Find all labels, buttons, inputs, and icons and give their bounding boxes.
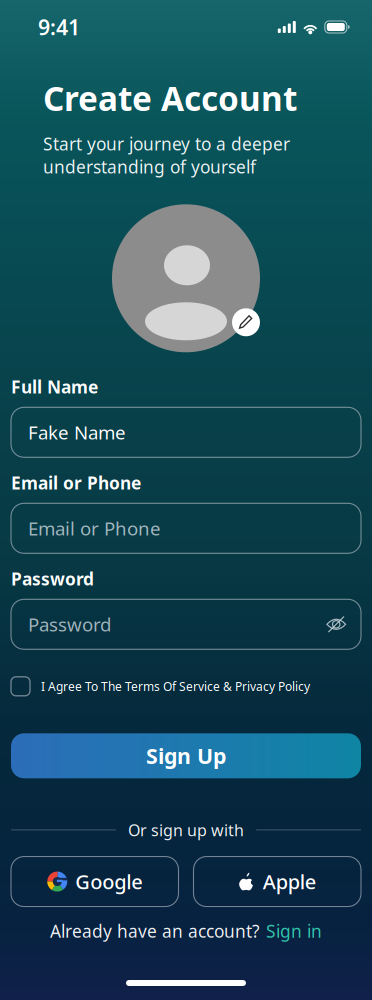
button[interactable]: Sign Up — [11, 733, 361, 778]
button[interactable]: Apple — [193, 856, 361, 906]
staticText: Sign Up — [146, 742, 226, 770]
staticText: Fake Name — [28, 420, 126, 445]
staticText: Apple — [263, 868, 316, 895]
staticText: Or sign up with — [128, 819, 244, 840]
staticText: Already have an account? — [50, 919, 260, 942]
staticText: Google — [75, 868, 142, 895]
staticText: Email or Phone — [28, 516, 161, 541]
button[interactable]: Fake Name — [11, 407, 361, 457]
staticText: I Agree To The Terms Of Service & Privac… — [41, 678, 310, 694]
button[interactable]: Edit profile photo — [232, 308, 260, 336]
button[interactable]: Google — [11, 856, 178, 906]
button[interactable]: Sign in — [266, 919, 322, 942]
staticText: Sign in — [266, 919, 322, 942]
button[interactable]: Password — [11, 599, 361, 649]
staticText: 9:41 — [38, 13, 80, 41]
staticText: Full Name — [11, 375, 98, 398]
staticText: Email or Phone — [11, 471, 141, 494]
staticText: Password — [11, 567, 94, 590]
staticText: Start your journey to a deeper understan… — [43, 132, 290, 178]
staticText: Password — [28, 612, 111, 637]
button[interactable]: I Agree To The Terms Of Service & Privac… — [0, 673, 372, 699]
button[interactable]: Email or Phone — [11, 503, 361, 553]
staticText: Create Account — [43, 76, 297, 120]
